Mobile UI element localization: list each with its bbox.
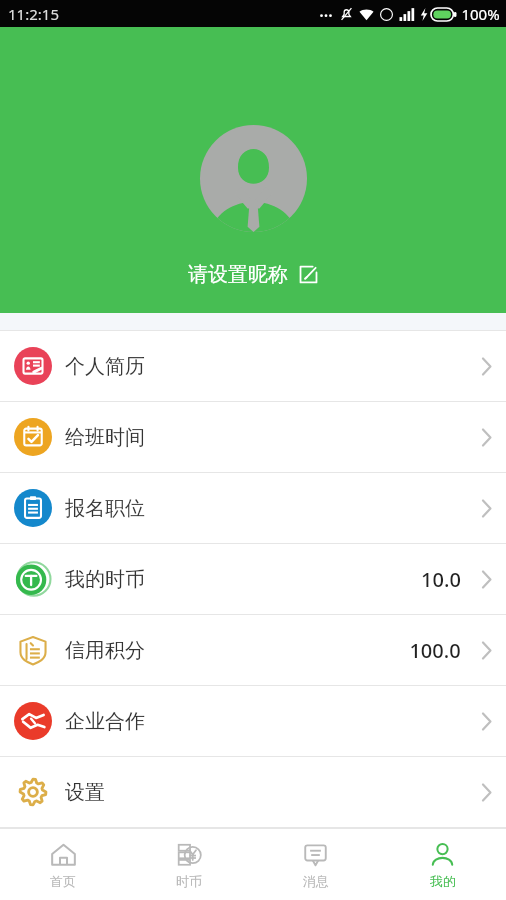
staticText: 个人简历 bbox=[65, 354, 145, 379]
button[interactable]: 消息 bbox=[252, 829, 379, 900]
staticText: 11:2:15 bbox=[8, 4, 59, 24]
staticText: 100% bbox=[461, 4, 500, 24]
button[interactable]: 时币 bbox=[126, 829, 252, 900]
button[interactable]: 设置 bbox=[0, 756, 506, 827]
button[interactable]: 我的时币 bbox=[0, 543, 506, 614]
staticText: 100.0 bbox=[409, 637, 461, 664]
button[interactable]: 个人简历 bbox=[0, 330, 506, 401]
staticText: 消息 bbox=[303, 873, 329, 889]
button[interactable]: 给班时间 bbox=[0, 401, 506, 472]
button[interactable]: 我的 bbox=[379, 829, 506, 900]
staticText: 报名职位 bbox=[65, 496, 145, 521]
button[interactable]: 请设置昵称 bbox=[180, 258, 327, 291]
button[interactable]: 首页 bbox=[0, 829, 126, 900]
staticText: 我的 bbox=[430, 873, 456, 889]
staticText: 10.0 bbox=[421, 566, 461, 593]
button[interactable]: 报名职位 bbox=[0, 472, 506, 543]
button[interactable]: 信用积分 bbox=[0, 614, 506, 685]
staticText: 信用积分 bbox=[65, 638, 145, 663]
staticText: 我的时币 bbox=[65, 567, 145, 592]
staticText: 企业合作 bbox=[65, 709, 145, 734]
staticText: 请设置昵称 bbox=[188, 262, 288, 287]
staticText: 给班时间 bbox=[65, 425, 145, 450]
button[interactable]: 企业合作 bbox=[0, 685, 506, 756]
staticText: 设置 bbox=[65, 780, 105, 805]
staticText: 首页 bbox=[50, 873, 76, 889]
other: Edit nickname bbox=[298, 264, 319, 285]
staticText: 时币 bbox=[176, 873, 202, 889]
